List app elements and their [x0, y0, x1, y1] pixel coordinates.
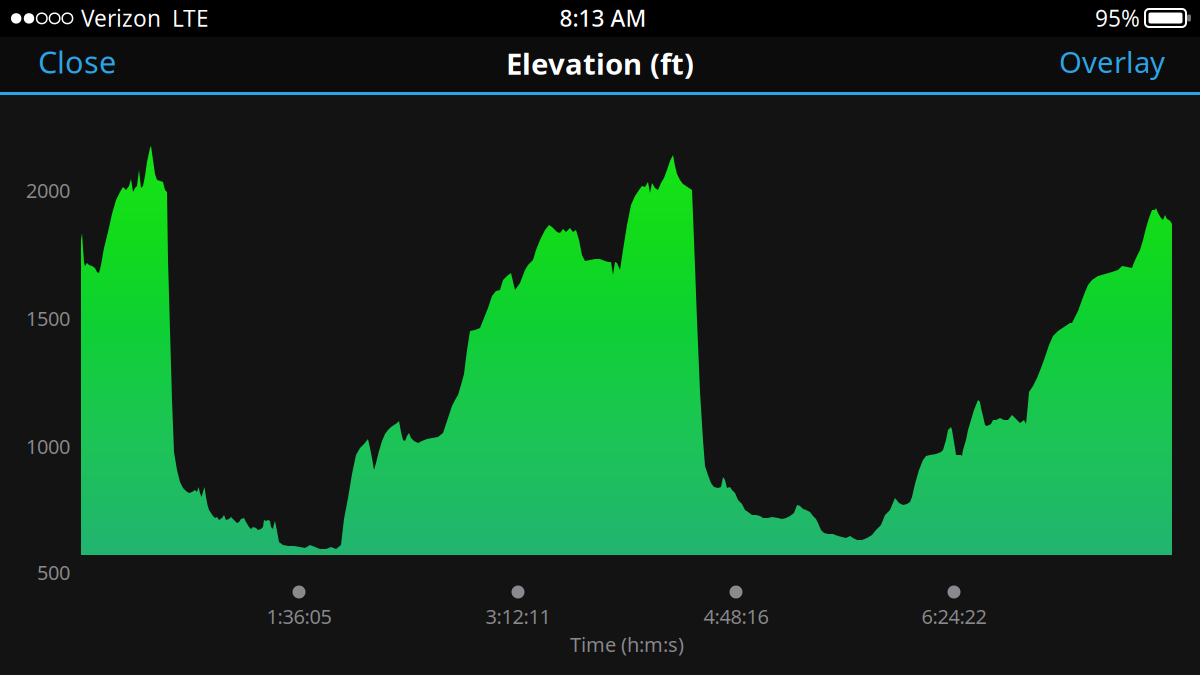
staticText: 1000 [26, 433, 70, 460]
staticText: Verizon [81, 3, 161, 33]
staticText: 1:36:05 [266, 603, 331, 630]
button[interactable]: Close [16, 34, 138, 89]
staticText: 1500 [26, 305, 70, 332]
staticText: 95% [1095, 3, 1140, 33]
button[interactable]: Overlay [1040, 34, 1184, 89]
staticText: Elevation (ft) [506, 44, 694, 83]
staticText: Close [38, 41, 116, 82]
staticText: 8:13 AM [559, 3, 646, 33]
staticText: 4:48:16 [703, 603, 768, 630]
staticText: Overlay [1059, 42, 1165, 81]
staticText: 3:12:11 [485, 603, 550, 630]
staticText: 500 [37, 559, 70, 586]
staticText: LTE [172, 3, 209, 33]
staticText: Time (h:m:s) [570, 631, 684, 658]
staticText: 2000 [26, 177, 70, 204]
staticText: 6:24:22 [921, 603, 986, 630]
